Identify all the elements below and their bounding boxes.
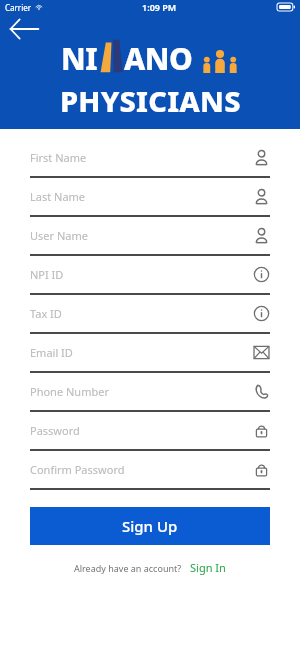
button[interactable]: First Name [30,139,270,178]
staticText: Password [30,423,253,438]
staticText: PHYSICIANS [60,81,241,120]
staticText: First Name [30,150,253,165]
button[interactable]: Tax ID [30,295,270,334]
button[interactable]: Last Name [30,178,270,217]
staticText: User Name [30,228,253,243]
staticText: Tax ID [30,306,253,321]
staticText: 1:09 PM [142,1,177,13]
button[interactable]: Sign Up [30,507,270,545]
staticText: Sign In [190,560,226,575]
staticText: Already have an account? [74,562,182,574]
staticText: Confirm Password [30,462,253,477]
button[interactable]: User Name [30,217,270,256]
button[interactable]: Password [30,412,270,451]
staticText: NPI ID [30,267,253,282]
staticText: Phone Number [30,384,253,399]
staticText: Sign Up [122,516,178,536]
button[interactable]: Email ID [30,334,270,373]
button[interactable]: Back [8,17,40,41]
button[interactable]: NPI ID [30,256,270,295]
button[interactable]: Confirm Password [30,451,270,490]
staticText: Carrier [5,2,32,13]
button[interactable]: Phone Number [30,373,270,412]
staticText: NI [61,38,98,79]
staticText: Email ID [30,345,253,360]
button[interactable]: Sign In [190,560,226,575]
staticText: ANO [124,38,193,79]
staticText: Last Name [30,189,253,204]
